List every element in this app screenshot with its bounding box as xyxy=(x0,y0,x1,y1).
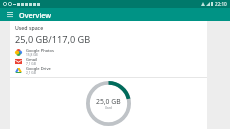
staticText: Used xyxy=(105,106,112,110)
staticText: 15,8 GB xyxy=(26,53,38,57)
staticText: Overview xyxy=(19,10,52,20)
button[interactable]: Google Drive xyxy=(10,66,207,75)
staticText: Used space xyxy=(15,24,44,31)
staticText: Google Drive xyxy=(26,66,51,71)
button[interactable]: Open navigation menu xyxy=(5,10,14,19)
button[interactable]: Google Photos xyxy=(10,48,207,57)
staticText: 2,1 GB xyxy=(26,71,36,75)
staticText: 25,0 GB/117,0 GB xyxy=(15,33,91,46)
staticText: 7,1 GB xyxy=(26,62,36,66)
staticText: Google Photos xyxy=(26,48,55,53)
button[interactable]: Gmail xyxy=(10,57,207,66)
staticText: 22:10 xyxy=(215,1,227,7)
staticText: 25,0 GB xyxy=(96,97,121,106)
staticText: Gmail xyxy=(26,57,38,62)
